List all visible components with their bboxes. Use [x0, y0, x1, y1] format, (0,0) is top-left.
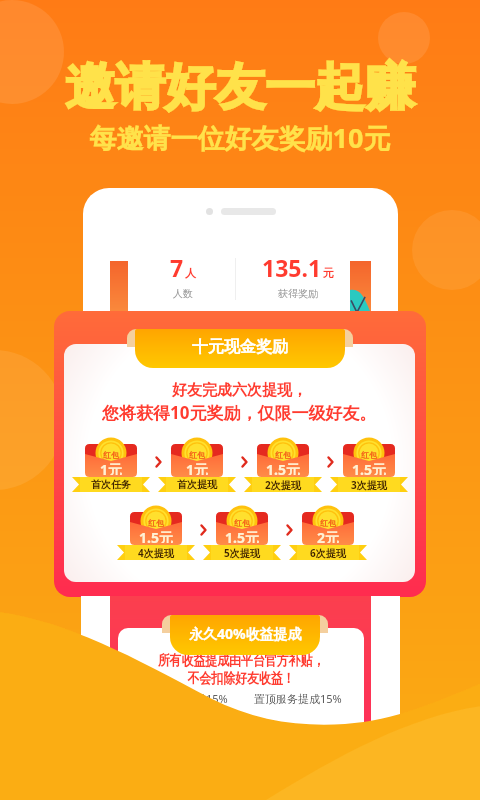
staticText: 购买会员提成15% — [140, 691, 228, 706]
staticText: 4次提现 — [138, 546, 174, 560]
staticText: 2次提现 — [265, 478, 301, 492]
staticText: 所有收益提成由平台官方补贴， — [158, 652, 324, 670]
staticText: 邀请好友一起赚 — [0, 56, 480, 119]
staticText: 红包 — [320, 518, 336, 528]
staticText: 不会扣除好友收益！ — [187, 670, 294, 688]
button[interactable]: 红包 — [289, 504, 367, 564]
staticText: 红包 — [234, 518, 250, 528]
staticText: 6次提现 — [310, 546, 346, 560]
staticText: 红包 — [103, 450, 119, 460]
staticText: 您将获得10元奖励，仅限一级好友。 — [102, 401, 377, 423]
staticText: 好友完成六次提现， — [172, 381, 307, 400]
button[interactable]: 红包 — [203, 504, 281, 564]
staticText: 元 — [323, 266, 334, 280]
staticText: 红包 — [189, 450, 205, 460]
staticText: 红包 — [148, 518, 164, 528]
staticText: 红包 — [361, 450, 377, 460]
staticText: 1.5元 — [352, 460, 386, 475]
button[interactable]: 红包 — [158, 436, 236, 496]
staticText: 红包 — [275, 450, 291, 460]
staticText: 置顶服务提成15% — [254, 691, 342, 706]
staticText: 1.5元 — [266, 460, 300, 475]
staticText: 2元 — [317, 528, 340, 543]
staticText: 首次提现 — [177, 478, 217, 491]
staticText: 7 — [170, 252, 184, 283]
staticText: 获得奖励 — [278, 287, 318, 300]
button[interactable]: 永久40%收益提成 — [162, 615, 328, 655]
staticText: 十元现金奖励 — [192, 337, 288, 357]
staticText: 3次提现 — [351, 478, 387, 492]
staticText: 人 — [185, 266, 196, 280]
staticText: 每邀请一位好友奖励10元 — [0, 119, 480, 156]
staticText: 5次提现 — [224, 546, 260, 560]
staticText: 人数 — [173, 287, 193, 300]
staticText: 135.1 — [262, 252, 322, 283]
button[interactable]: 红包 — [72, 436, 150, 496]
button[interactable]: 十元现金奖励 — [127, 329, 353, 368]
staticText: 1元 — [100, 460, 123, 475]
staticText: 首次任务 — [91, 478, 131, 491]
button[interactable]: 红包 — [117, 504, 195, 564]
staticText: 1.5元 — [225, 528, 259, 543]
button[interactable]: 红包 — [330, 436, 408, 496]
staticText: 1.5元 — [139, 528, 173, 543]
staticText: 1元 — [186, 460, 209, 475]
button[interactable]: 红包 — [244, 436, 322, 496]
staticText: 永久40%收益提成 — [189, 624, 302, 643]
